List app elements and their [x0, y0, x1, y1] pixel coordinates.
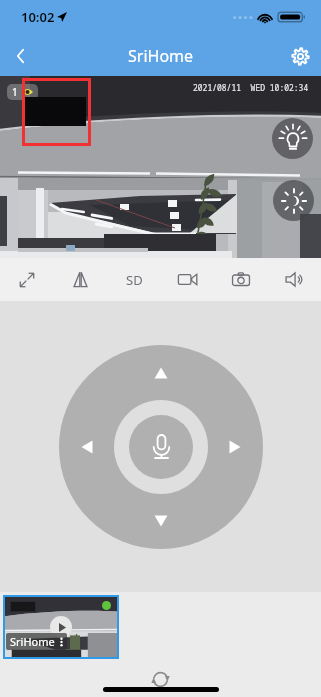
button[interactable]: SriHome camera [5, 597, 117, 657]
staticText: SriHome [10, 634, 55, 649]
button[interactable]: Pan tilt control [59, 345, 263, 549]
button[interactable]: Settings [279, 36, 321, 76]
button[interactable]: Light [272, 118, 313, 159]
staticText: 10:02 [21, 8, 55, 26]
staticText: 1 [12, 85, 18, 99]
button[interactable]: Record [165, 258, 209, 301]
staticText: SriHome [128, 45, 194, 67]
button[interactable]: Refresh [151, 670, 170, 689]
button[interactable]: Talk [129, 415, 193, 479]
button[interactable]: Back [0, 36, 42, 76]
staticText: SD [126, 271, 143, 289]
button[interactable]: Mirror [58, 258, 102, 301]
button[interactable]: Stream quality SD [112, 258, 156, 301]
button[interactable]: Snapshot [219, 258, 263, 301]
button[interactable]: Day night mode [273, 180, 314, 221]
button[interactable]: Fullscreen [5, 258, 49, 301]
button[interactable]: Sound [272, 258, 316, 301]
staticText: 2021/08/11 WED 10:02:34 [193, 82, 309, 93]
